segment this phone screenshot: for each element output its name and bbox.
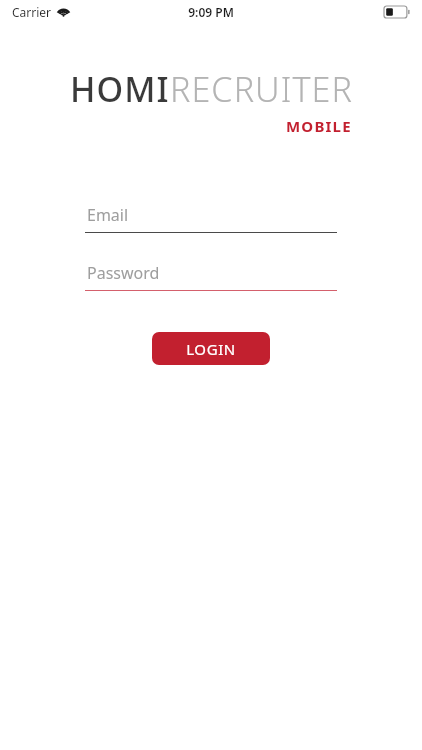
staticText: 9:09 PM	[188, 4, 234, 20]
staticText: Password	[87, 262, 160, 284]
staticText: RECRUITER	[170, 66, 353, 112]
staticText: Carrier	[12, 4, 52, 20]
staticText: MOBILE	[286, 116, 352, 136]
staticText: LOGIN	[186, 339, 236, 359]
button[interactable]: Password	[85, 260, 337, 291]
staticText: Email	[87, 204, 129, 226]
button[interactable]: Email	[85, 202, 337, 233]
button[interactable]: LOGIN	[152, 332, 270, 365]
staticText: HOMI	[70, 66, 170, 112]
